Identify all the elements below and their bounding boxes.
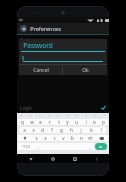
staticText: Cancel bbox=[33, 67, 49, 74]
staticText: h bbox=[70, 127, 73, 133]
button[interactable]: j bbox=[76, 127, 86, 133]
button[interactable]: y bbox=[63, 119, 72, 125]
button[interactable]: e bbox=[36, 119, 45, 125]
button[interactable]: c bbox=[50, 135, 59, 141]
button[interactable] bbox=[23, 55, 103, 61]
button[interactable]: k bbox=[86, 127, 96, 133]
staticText: m bbox=[88, 135, 93, 141]
staticText: Preferences bbox=[30, 25, 61, 32]
staticText: l bbox=[100, 127, 102, 133]
button[interactable]: o bbox=[90, 119, 99, 125]
button[interactable]: w bbox=[27, 119, 36, 125]
staticText: ?123 bbox=[22, 144, 30, 149]
staticText: g bbox=[60, 127, 63, 133]
button[interactable]: q bbox=[18, 119, 27, 125]
staticText: z bbox=[35, 135, 38, 141]
staticText: y bbox=[66, 119, 69, 125]
button[interactable]: f bbox=[47, 127, 56, 133]
staticText: q bbox=[21, 119, 24, 125]
button[interactable]: r bbox=[45, 119, 54, 125]
button[interactable]: p bbox=[99, 119, 108, 125]
button[interactable]: h bbox=[66, 127, 76, 133]
button[interactable]: i bbox=[81, 119, 90, 125]
staticText: k bbox=[90, 127, 93, 133]
staticText: r bbox=[49, 119, 51, 125]
button[interactable]: More options bbox=[92, 154, 101, 163]
staticText: t bbox=[58, 119, 60, 125]
staticText: Ok bbox=[82, 67, 89, 74]
button[interactable]: Cancel bbox=[19, 65, 62, 75]
button[interactable]: n bbox=[77, 135, 86, 141]
staticText: . bbox=[89, 144, 91, 150]
button[interactable]: u bbox=[72, 119, 81, 125]
button[interactable]: Send bbox=[95, 143, 107, 150]
button[interactable]: Backspace bbox=[95, 135, 108, 141]
button[interactable]: v bbox=[59, 135, 68, 141]
other: App icon bbox=[20, 25, 27, 32]
staticText: u bbox=[75, 119, 78, 125]
staticText: o bbox=[93, 119, 96, 125]
staticText: s bbox=[32, 127, 35, 133]
button[interactable]: t bbox=[54, 119, 63, 125]
button[interactable]: m bbox=[86, 135, 95, 141]
button[interactable]: b bbox=[68, 135, 77, 141]
button[interactable]: x bbox=[41, 135, 50, 141]
staticText: b bbox=[71, 135, 74, 141]
staticText: f bbox=[51, 127, 53, 133]
staticText: , bbox=[37, 144, 39, 150]
button[interactable]: Login bbox=[20, 103, 106, 112]
button[interactable]: ?123 bbox=[18, 143, 33, 150]
staticText: c bbox=[53, 135, 56, 141]
button[interactable]: Shift bbox=[18, 135, 32, 141]
staticText: p bbox=[102, 119, 105, 125]
button[interactable]: s bbox=[29, 127, 38, 133]
button[interactable]: Ok bbox=[63, 65, 107, 75]
staticText: i bbox=[85, 119, 87, 125]
button[interactable]: Back bbox=[26, 154, 35, 163]
staticText: j bbox=[80, 127, 82, 133]
button[interactable]: Recent apps bbox=[70, 154, 79, 163]
button[interactable]: . bbox=[85, 143, 94, 150]
staticText: v bbox=[62, 135, 65, 141]
staticText: Password bbox=[23, 41, 53, 50]
button[interactable]: d bbox=[38, 127, 47, 133]
staticText: w bbox=[30, 119, 34, 125]
button[interactable]: Home bbox=[48, 154, 57, 163]
staticText: x bbox=[44, 135, 47, 141]
button[interactable]: l bbox=[96, 127, 106, 133]
staticText: a bbox=[23, 127, 26, 133]
staticText: Preferences bbox=[20, 37, 46, 43]
staticText: e bbox=[39, 119, 42, 125]
staticText: n bbox=[80, 135, 83, 141]
staticText: d bbox=[41, 127, 44, 133]
button[interactable]: z bbox=[32, 135, 41, 141]
button[interactable]: g bbox=[56, 127, 66, 133]
staticText: Login bbox=[20, 105, 32, 111]
button[interactable]: a bbox=[20, 127, 29, 133]
button[interactable]: , bbox=[33, 143, 42, 150]
